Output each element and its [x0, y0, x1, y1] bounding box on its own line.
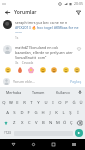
staticText: #FIX2013 🔥 hoc togel #KMbas for ne—— — [15, 25, 82, 35]
staticText: Ğ — [72, 100, 76, 106]
button[interactable]: Emoji — [62, 66, 70, 74]
button[interactable]: Ş — [67, 108, 74, 118]
staticText: X — [21, 120, 24, 126]
button[interactable]: Ç — [68, 118, 75, 128]
staticText: T — [30, 100, 33, 106]
staticText: P — [65, 100, 68, 106]
button[interactable]: Emoji — [16, 66, 24, 74]
button[interactable]: V — [33, 118, 40, 128]
staticText: L — [62, 110, 65, 116]
staticText: Ş — [69, 110, 72, 116]
button[interactable]: Recents — [49, 140, 58, 149]
button[interactable]: Ö — [61, 118, 68, 128]
staticText: 1s — [15, 36, 19, 40]
staticText: Yorum ekle... — [13, 79, 35, 84]
button[interactable]: Profile photo — [3, 45, 12, 54]
button[interactable]: Send — [75, 129, 83, 137]
button[interactable]: C — [26, 118, 33, 128]
button[interactable]: S — [11, 108, 18, 118]
button[interactable]: Backspace — [75, 118, 84, 128]
staticText: V — [35, 120, 38, 126]
button[interactable]: Emoji — [4, 66, 12, 74]
button[interactable]: Q — [1, 98, 7, 108]
button[interactable]: Back — [3, 8, 11, 16]
staticText: SonusBnuttt comʺ — [15, 55, 47, 60]
button[interactable]: K — [53, 108, 60, 118]
button[interactable]: Y — [35, 98, 42, 108]
staticText: Kullanıcı — [56, 90, 71, 95]
button[interactable]: U — [42, 98, 49, 108]
staticText: Q — [2, 100, 6, 106]
button[interactable]: Back — [9, 140, 18, 149]
button[interactable]: Like — [75, 45, 82, 52]
button[interactable]: Yorum ekle... — [3, 76, 82, 87]
button[interactable]: Emoji — [27, 66, 35, 74]
button[interactable]: ?123 — [2, 128, 12, 138]
staticText: N — [49, 120, 53, 126]
staticText: Ö — [63, 120, 67, 126]
staticText: R — [23, 100, 26, 106]
button[interactable]: Merhaba — [2, 87, 26, 97]
button[interactable]: G — [32, 108, 39, 118]
staticText: O — [58, 100, 62, 106]
button[interactable]: T — [28, 98, 35, 108]
staticText: mathdZ1Sonuland en cok — [15, 45, 59, 50]
staticText: A — [6, 110, 9, 116]
button[interactable]: Ğ — [70, 98, 77, 108]
button[interactable]: Emoji — [73, 66, 81, 74]
button[interactable]: O — [56, 98, 63, 108]
staticText: U — [44, 100, 48, 106]
staticText: ?123 — [4, 131, 11, 135]
button[interactable]: Z — [10, 118, 18, 128]
button[interactable]: X — [18, 118, 26, 128]
button[interactable]: H — [39, 108, 46, 118]
button[interactable]: P — [63, 98, 70, 108]
staticText: H — [41, 110, 45, 116]
button[interactable]: Ü — [77, 98, 84, 108]
button[interactable]: D — [18, 108, 25, 118]
staticText: 20:05 — [74, 1, 83, 6]
staticText: 3s Cevapla — [15, 61, 34, 64]
staticText: W — [9, 100, 13, 106]
staticText: bazardan, ellerde ve prelyuen uter — [15, 50, 73, 55]
staticText: I — [52, 100, 54, 106]
staticText: Ç — [70, 120, 73, 126]
staticText: Paylaş — [70, 79, 82, 84]
staticText: Ü — [79, 100, 83, 106]
button[interactable]: N — [47, 118, 54, 128]
button[interactable]: I — [49, 98, 56, 108]
staticText: J — [49, 110, 51, 116]
button[interactable]: F — [25, 108, 32, 118]
button[interactable]: B — [40, 118, 47, 128]
staticText: Merhaba — [6, 90, 22, 95]
staticText: S — [13, 110, 16, 116]
button[interactable]: Shift — [1, 118, 10, 128]
button[interactable]: Voice input — [76, 87, 83, 97]
button[interactable]: M — [54, 118, 61, 128]
button[interactable]: Profile photo — [3, 20, 12, 29]
button[interactable]: E — [14, 98, 21, 108]
staticText: C — [28, 120, 31, 126]
staticText: Tamam — [32, 90, 45, 95]
button[interactable]: Kullanıcı — [51, 87, 76, 97]
staticText: Z — [13, 120, 16, 126]
button[interactable]: Emoji — [39, 66, 47, 74]
button[interactable]: Share — [74, 8, 82, 16]
staticText: Yorumlar — [14, 9, 37, 16]
button[interactable]: L — [60, 108, 67, 118]
staticText: G — [34, 110, 38, 116]
button[interactable]: J — [46, 108, 53, 118]
button[interactable]: Hide keyboard — [69, 140, 78, 149]
button[interactable]: R — [21, 98, 28, 108]
button[interactable]: W — [7, 98, 14, 108]
button[interactable]: Emoji — [50, 66, 58, 74]
button[interactable]: A — [4, 108, 11, 118]
button[interactable]: Tamam — [26, 87, 51, 97]
button[interactable]: İ — [74, 108, 81, 118]
staticText: K — [55, 110, 58, 116]
staticText: M — [56, 120, 60, 126]
staticText: Y — [37, 100, 40, 106]
staticText: B — [42, 120, 45, 126]
button[interactable]: Home — [29, 140, 38, 149]
